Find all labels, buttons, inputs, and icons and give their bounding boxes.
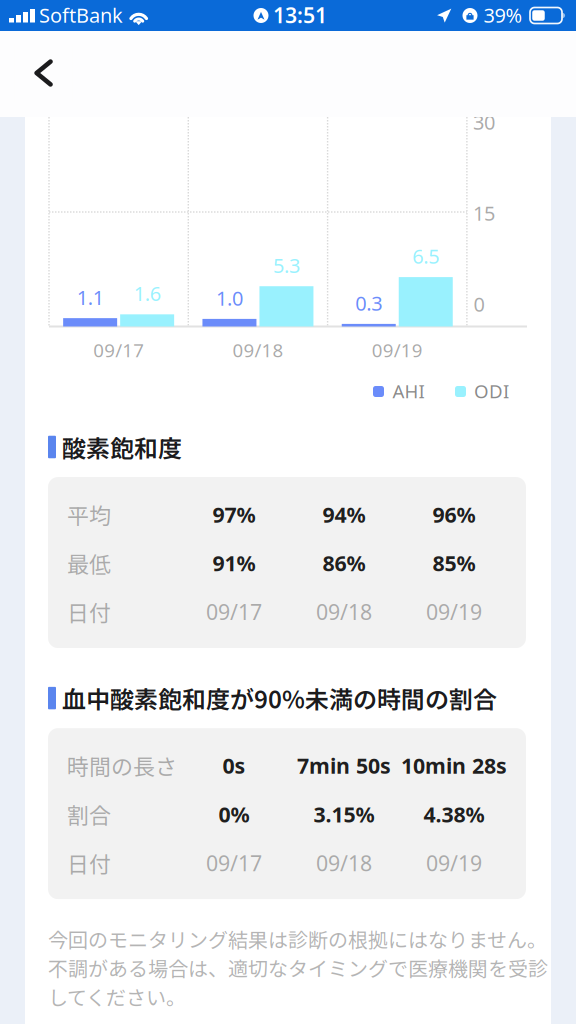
staticText: 15 (473, 200, 495, 226)
staticText: してください。 (48, 982, 186, 1011)
staticText: 3.15% (313, 800, 374, 828)
staticText: 1.1 (77, 284, 104, 310)
staticText: 4.38% (423, 800, 484, 828)
staticText: 09/17 (93, 338, 144, 362)
staticText: 0% (218, 800, 249, 828)
staticText: 91% (212, 549, 255, 577)
staticText: 09/19 (426, 598, 482, 626)
staticText: 0s (222, 751, 245, 780)
staticText: 7min 50s (297, 751, 391, 780)
staticText: 96% (432, 500, 475, 528)
staticText: 時間の長さ (67, 749, 177, 781)
staticText: 6.5 (412, 243, 439, 269)
staticText: 09/18 (316, 598, 372, 626)
staticText: 今回のモニタリング結果は診断の根拠にはなりません。 (48, 924, 547, 953)
staticText: 85% (432, 549, 475, 577)
staticText: 09/17 (206, 598, 262, 626)
staticText: 09/18 (232, 338, 283, 362)
staticText: 09/17 (206, 849, 262, 877)
staticText: 30 (473, 109, 495, 135)
staticText: 09/19 (426, 849, 482, 877)
staticText: 平均 (67, 498, 111, 530)
staticText: ODI (474, 379, 509, 403)
staticText: 酸素飽和度 (62, 430, 182, 464)
staticText: 割合 (67, 798, 111, 830)
staticText: 97% (212, 500, 255, 528)
staticText: 0 (473, 291, 484, 317)
staticText: 日付 (67, 596, 111, 628)
staticText: 最低 (67, 547, 111, 579)
staticText: 不調がある場合は、適切なタイミングで医療機関を受診 (48, 953, 548, 982)
staticText: 0.3 (355, 290, 382, 316)
staticText: 1.6 (134, 280, 161, 307)
staticText: 86% (322, 549, 365, 577)
staticText: 10min 28s (401, 751, 507, 780)
staticText: 09/19 (372, 338, 423, 362)
staticText: 日付 (67, 847, 111, 879)
staticText: 13:51 (273, 1, 327, 29)
staticText: 39% (483, 2, 522, 28)
staticText: SoftBank (39, 2, 123, 28)
staticText: 血中酸素飽和度が90%未満の時間の割合 (62, 681, 497, 715)
button[interactable]: Back (14, 44, 72, 102)
staticText: 94% (322, 500, 365, 528)
staticText: 09/18 (316, 849, 372, 877)
staticText: AHI (392, 379, 424, 403)
staticText: 1.0 (216, 285, 243, 311)
staticText: 5.3 (273, 252, 300, 278)
